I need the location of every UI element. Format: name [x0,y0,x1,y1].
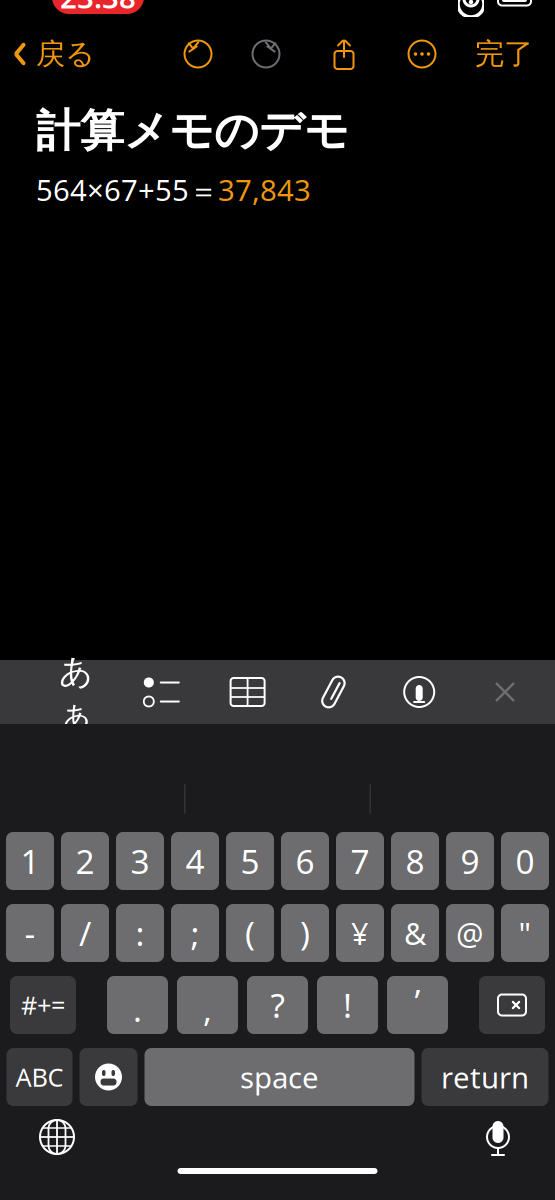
staticText: 0 [515,839,534,883]
staticText: : [135,911,144,955]
staticText: @ [456,913,484,953]
staticText: 戻る [36,36,95,72]
button[interactable]: ! [317,976,378,1034]
staticText: 7 [350,839,369,883]
staticText: & [404,913,426,953]
staticText: 2 [75,839,94,883]
button[interactable]: 共有 [325,32,363,76]
staticText: ? [270,983,284,1027]
staticText: 4 [185,839,204,883]
staticText: 8 [405,839,424,883]
button[interactable]: @ [446,904,494,962]
button[interactable]: #+= [10,976,76,1034]
button[interactable]: , [177,976,238,1034]
button[interactable]: マークアップ [397,670,441,714]
staticText: 37,843 [218,170,311,209]
button[interactable]: 9 [446,832,494,890]
staticText: " [518,913,531,953]
button[interactable]: " [501,904,549,962]
staticText: 完了 [475,36,533,72]
button[interactable]: その他 [401,33,443,75]
staticText: 計算メモのデモ [36,104,349,158]
staticText: 9 [460,839,479,883]
button[interactable]: 2 [61,832,109,890]
button[interactable]: ? [247,976,308,1034]
button[interactable]: ; [171,904,219,962]
button[interactable]: return [421,1048,548,1106]
button[interactable]: 0 [501,832,549,890]
button[interactable]: ( [226,904,274,962]
button[interactable]: : [116,904,164,962]
button[interactable]: やり直す [245,33,287,75]
button[interactable]: 音声入力 [473,1112,523,1162]
staticText: #+= [21,988,65,1022]
button[interactable]: 閉じる [483,670,527,714]
button[interactable]: 言語を切り替え [32,1112,82,1162]
staticText: 23:38 [60,0,136,16]
button[interactable]: - [6,904,54,962]
button[interactable]: 7 [336,832,384,890]
button[interactable]: 4 [171,832,219,890]
button[interactable]: 3 [116,832,164,890]
button[interactable]: / [61,904,109,962]
button[interactable]: ABC [6,1048,72,1106]
staticText: ABC [15,1060,63,1094]
staticText: / [79,911,91,955]
button[interactable]: 絵文字 [79,1048,137,1106]
button[interactable]: 削除 [479,976,545,1034]
button[interactable]: ¥ [336,904,384,962]
staticText: . [133,987,142,1031]
button[interactable]: 6 [281,832,329,890]
button[interactable]: 戻る [0,26,107,82]
staticText: 564×67+55＝ [36,170,218,209]
button[interactable]: ) [281,904,329,962]
button[interactable]: 添付 [311,670,355,714]
staticText: ’ [414,979,420,1023]
staticText: - [24,911,35,955]
staticText: return [441,1057,529,1096]
button[interactable]: . [107,976,168,1034]
button[interactable]: チェックリスト [140,670,184,714]
button[interactable]: 1 [6,832,54,890]
button[interactable]: 表 [226,670,270,714]
button[interactable]: 取り消す [177,33,219,75]
staticText: ( [245,911,255,955]
staticText: 6 [295,839,314,883]
staticText: あぁ [59,651,93,733]
button[interactable]: 5 [226,832,274,890]
button[interactable]: 完了 [467,26,541,82]
button[interactable]: space [144,1048,414,1106]
button[interactable]: ’ [387,976,448,1034]
staticText: ) [300,911,310,955]
staticText: , [203,987,212,1031]
button[interactable]: 書式 [54,670,98,714]
staticText: ¥ [351,913,369,953]
staticText: 5 [240,839,259,883]
staticText: ! [343,983,352,1027]
button[interactable]: & [391,904,439,962]
staticText: ; [190,911,199,955]
staticText: space [240,1057,319,1096]
staticText: 3 [130,839,149,883]
staticText: 1 [20,839,39,883]
button[interactable]: 8 [391,832,439,890]
